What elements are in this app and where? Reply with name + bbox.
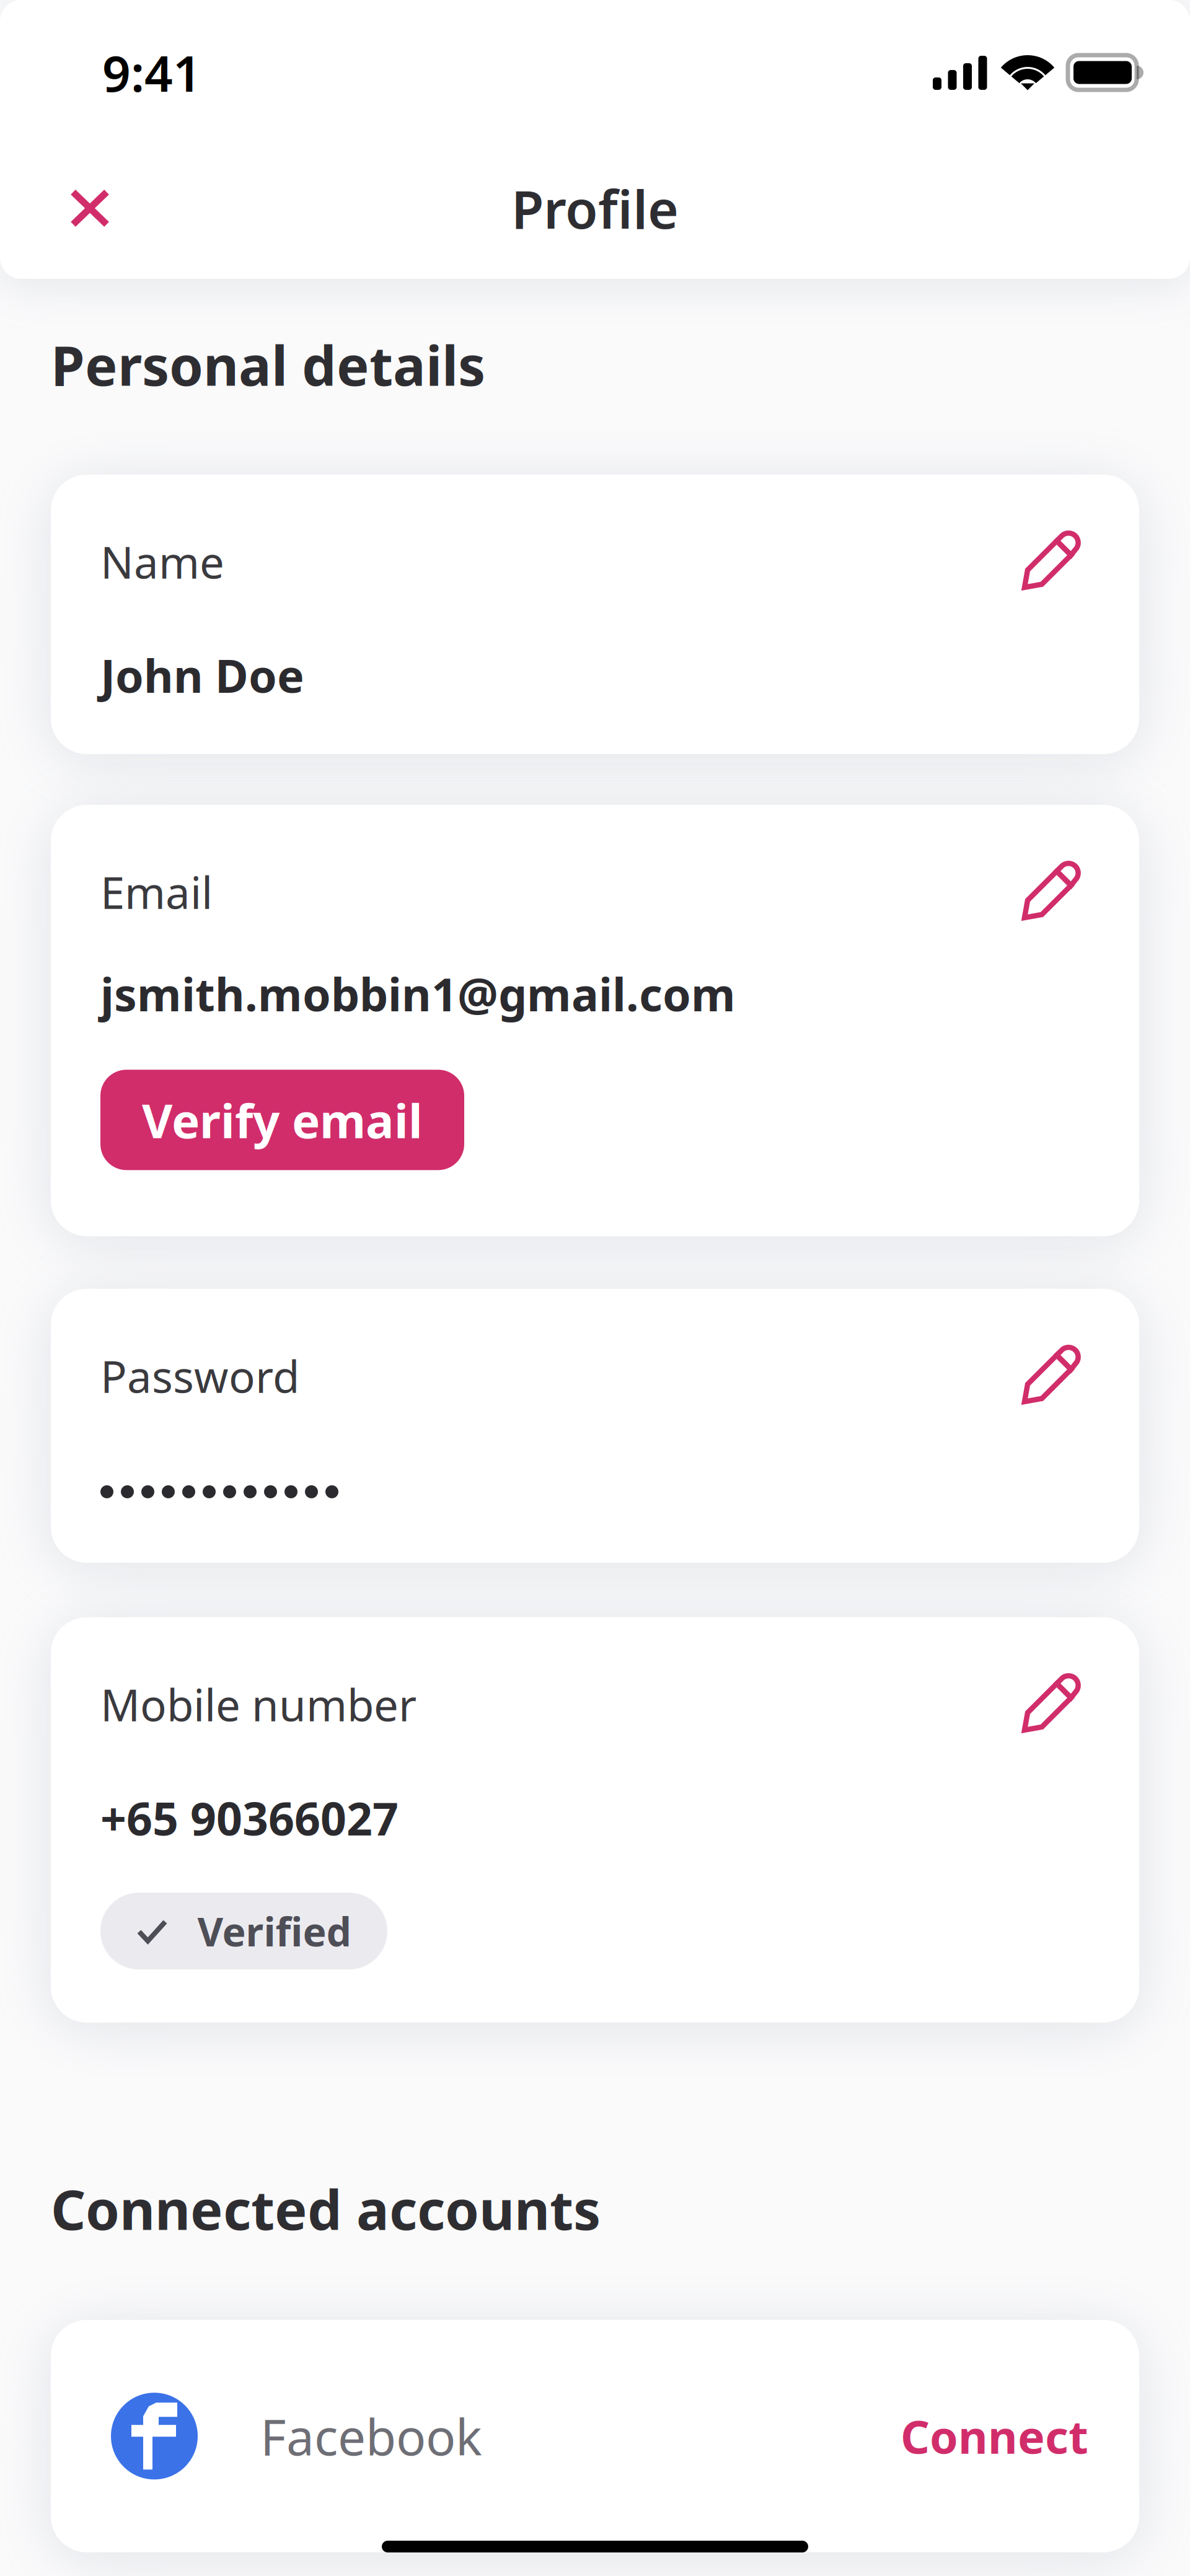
staticText: Connect (901, 2406, 1088, 2466)
staticText: Verify email (142, 1089, 423, 1151)
button[interactable]: Edit Mobile number (1021, 1675, 1080, 1734)
staticText: Personal details (51, 328, 485, 401)
button[interactable]: Edit Email (1021, 863, 1080, 921)
staticText: jsmith.mobbin1@gmail.com (100, 964, 736, 1024)
staticText: Facebook (260, 2403, 482, 2469)
staticText: Connected accounts (51, 2173, 601, 2245)
staticText: +65 90366027 (100, 1788, 399, 1848)
button[interactable]: Close (34, 161, 146, 255)
button[interactable]: Edit Password (1021, 1346, 1080, 1405)
staticText: Password (100, 1347, 299, 1405)
staticText: Verified (197, 1905, 351, 1957)
button[interactable]: Connect (901, 2406, 1088, 2466)
staticText: Mobile number (100, 1675, 416, 1733)
staticText: Profile (511, 173, 679, 243)
button[interactable]: Edit Name (1021, 532, 1080, 591)
staticText: John Doe (100, 645, 304, 705)
staticText: 9:41 (102, 40, 201, 105)
staticText: Name (100, 533, 224, 591)
staticText: Email (100, 863, 213, 921)
button[interactable]: Verify email (100, 1070, 464, 1170)
